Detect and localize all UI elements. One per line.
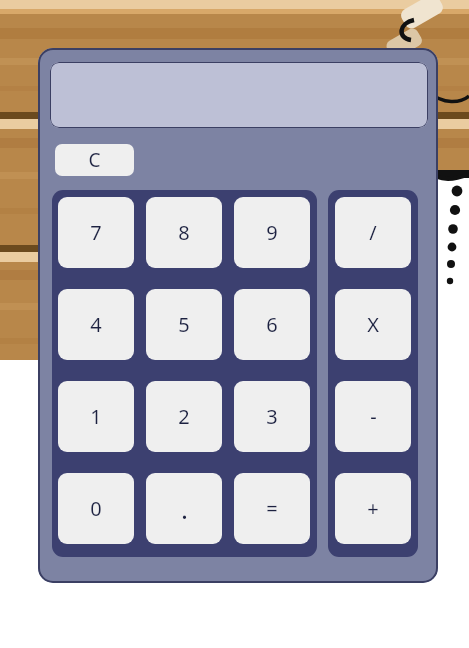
button[interactable]: . <box>146 473 222 544</box>
staticText: 6 <box>266 311 278 338</box>
staticText: X <box>367 311 379 338</box>
button[interactable]: = <box>234 473 310 544</box>
button[interactable]: - <box>335 381 411 452</box>
button[interactable]: 5 <box>146 289 222 360</box>
button[interactable]: 9 <box>234 197 310 268</box>
button[interactable]: C <box>55 144 134 176</box>
staticText: 5 <box>178 311 190 338</box>
button[interactable]: 4 <box>58 289 134 360</box>
button[interactable]: / <box>335 197 411 268</box>
button[interactable]: 2 <box>146 381 222 452</box>
staticText: / <box>369 219 377 246</box>
button[interactable]: 6 <box>234 289 310 360</box>
button[interactable]: 3 <box>234 381 310 452</box>
staticText: 4 <box>90 311 102 338</box>
other: Result display <box>50 62 428 128</box>
button[interactable]: 1 <box>58 381 134 452</box>
button[interactable]: 8 <box>146 197 222 268</box>
staticText: - <box>370 403 377 430</box>
staticText: 0 <box>90 495 102 522</box>
staticText: 3 <box>266 403 278 430</box>
staticText: 9 <box>266 219 278 246</box>
staticText: C <box>88 147 101 173</box>
staticText: 1 <box>90 403 102 430</box>
button[interactable]: X <box>335 289 411 360</box>
staticText: + <box>367 495 379 522</box>
staticText: = <box>266 495 278 522</box>
staticText: . <box>181 491 188 526</box>
staticText: 8 <box>178 219 190 246</box>
button[interactable]: + <box>335 473 411 544</box>
staticText: 7 <box>90 219 102 246</box>
staticText: 2 <box>178 403 190 430</box>
button[interactable]: 0 <box>58 473 134 544</box>
button[interactable]: 7 <box>58 197 134 268</box>
